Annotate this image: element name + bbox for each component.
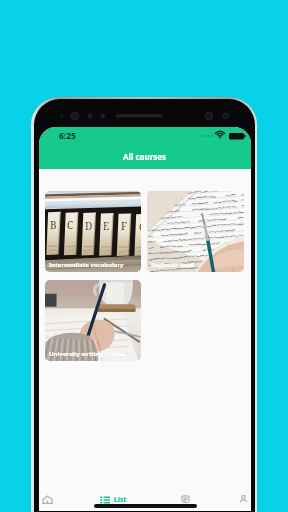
staticText: 6:25 bbox=[59, 130, 76, 142]
staticText: E bbox=[103, 219, 110, 233]
staticText: University writing Course bbox=[49, 350, 126, 358]
staticText: G bbox=[139, 220, 141, 234]
button[interactable]: Feed bbox=[181, 494, 190, 504]
staticText: List bbox=[114, 495, 127, 505]
staticText: Beginner level bbox=[151, 261, 194, 269]
button[interactable]: Account bbox=[239, 494, 248, 504]
button[interactable]: Home bbox=[42, 494, 53, 505]
staticText: B bbox=[50, 218, 57, 232]
button[interactable]: Beginner level bbox=[147, 191, 244, 272]
staticText: Intermediate vocabulary bbox=[49, 261, 124, 269]
button[interactable]: University writing Course bbox=[45, 280, 141, 361]
staticText: All courses bbox=[123, 151, 167, 162]
button[interactable]: B bbox=[45, 191, 141, 272]
staticText: F bbox=[121, 219, 127, 233]
staticText: D bbox=[85, 219, 93, 233]
staticText: C bbox=[67, 218, 74, 232]
button[interactable]: List bbox=[100, 494, 127, 505]
